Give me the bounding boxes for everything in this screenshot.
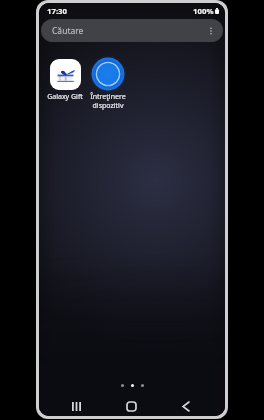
button[interactable]: Căutare	[41, 19, 223, 42]
staticText: Căutare	[52, 25, 84, 37]
button[interactable]: Back	[173, 397, 199, 416]
staticText: Galaxy Gift	[47, 92, 83, 102]
staticText: 17:30	[47, 6, 68, 16]
button[interactable]: Întreţinere dispozitiv	[86, 57, 129, 110]
button[interactable]: Galaxy Gift	[43, 57, 86, 102]
button[interactable]: Recents	[63, 397, 89, 416]
staticText: Întreţinere dispozitiv	[90, 92, 126, 110]
staticText: 100%	[193, 6, 214, 16]
button[interactable]: Home	[118, 397, 144, 416]
button[interactable]: More options	[205, 25, 217, 37]
